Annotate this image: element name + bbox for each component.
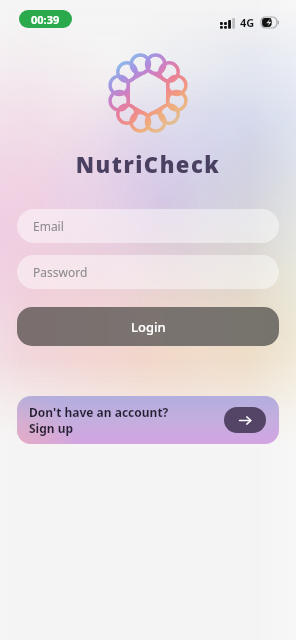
staticText: Password <box>33 264 88 280</box>
button[interactable]: Email <box>17 209 279 243</box>
staticText: Login <box>131 318 166 336</box>
button[interactable]: Don't have an account? <box>17 396 279 444</box>
button[interactable]: Sign up <box>224 407 266 433</box>
button[interactable]: Password <box>17 255 279 289</box>
staticText: Sign up <box>29 420 74 436</box>
staticText: 4G <box>240 15 255 30</box>
staticText: NutriCheck <box>0 149 296 179</box>
staticText: Don't have an account? <box>29 404 169 420</box>
staticText: Email <box>33 218 64 234</box>
button[interactable]: Login <box>17 307 279 346</box>
staticText: 00:39 <box>31 12 60 27</box>
